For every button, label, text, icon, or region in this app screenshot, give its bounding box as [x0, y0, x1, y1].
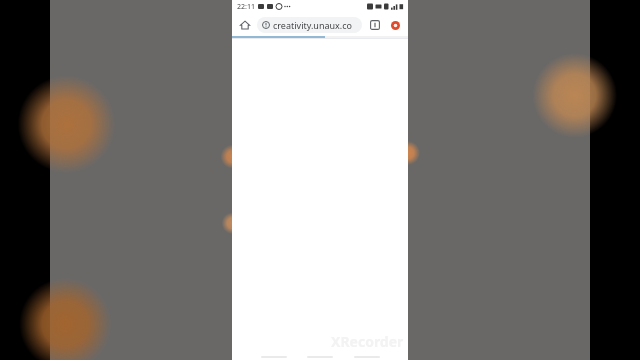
button[interactable]: creativity.unaux.com [257, 17, 362, 33]
staticText: 22:11 [237, 2, 255, 12]
button[interactable]: Switch tabs [366, 16, 384, 34]
button[interactable]: Account [386, 16, 404, 34]
staticText: XRecorder [331, 332, 404, 351]
staticText: creativity.unaux.com [273, 19, 357, 31]
button[interactable]: Home [236, 16, 254, 34]
